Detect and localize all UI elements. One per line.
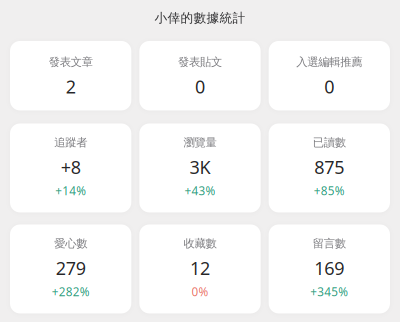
button[interactable]: 發表文章 — [10, 41, 131, 110]
button[interactable]: 入選編輯推薦 — [269, 41, 390, 110]
staticText: 瀏覽量 — [183, 135, 216, 150]
button[interactable]: 收藏數 — [139, 224, 261, 313]
staticText: 0% — [191, 284, 208, 300]
staticText: +14% — [55, 183, 86, 199]
staticText: +43% — [184, 183, 215, 199]
staticText: 愛心數 — [54, 236, 87, 251]
staticText: 入選編輯推薦 — [296, 55, 362, 69]
staticText: 留言數 — [313, 236, 346, 251]
staticText: 已讀數 — [313, 135, 346, 150]
staticText: 279 — [56, 256, 86, 280]
button[interactable]: 已讀數 — [269, 123, 390, 212]
staticText: 12 — [190, 256, 210, 280]
staticText: 2 — [66, 74, 76, 99]
staticText: 875 — [314, 155, 344, 179]
staticText: 小倖的數據統計 — [154, 10, 245, 26]
button[interactable]: 發表貼文 — [139, 41, 261, 110]
staticText: 追蹤者 — [54, 135, 87, 150]
staticText: +85% — [314, 183, 345, 199]
staticText: 169 — [314, 256, 344, 280]
staticText: 收藏數 — [183, 236, 216, 251]
staticText: 3K — [189, 155, 210, 179]
button[interactable]: 留言數 — [269, 224, 390, 313]
staticText: +282% — [52, 284, 90, 300]
staticText: +8 — [61, 155, 81, 179]
staticText: 0 — [195, 74, 205, 99]
button[interactable]: 瀏覽量 — [139, 123, 261, 212]
staticText: +345% — [310, 284, 348, 300]
button[interactable]: 追蹤者 — [10, 123, 131, 212]
staticText: 發表貼文 — [178, 55, 222, 69]
staticText: 0 — [324, 74, 334, 99]
staticText: 發表文章 — [49, 55, 93, 69]
button[interactable]: 愛心數 — [10, 224, 131, 313]
